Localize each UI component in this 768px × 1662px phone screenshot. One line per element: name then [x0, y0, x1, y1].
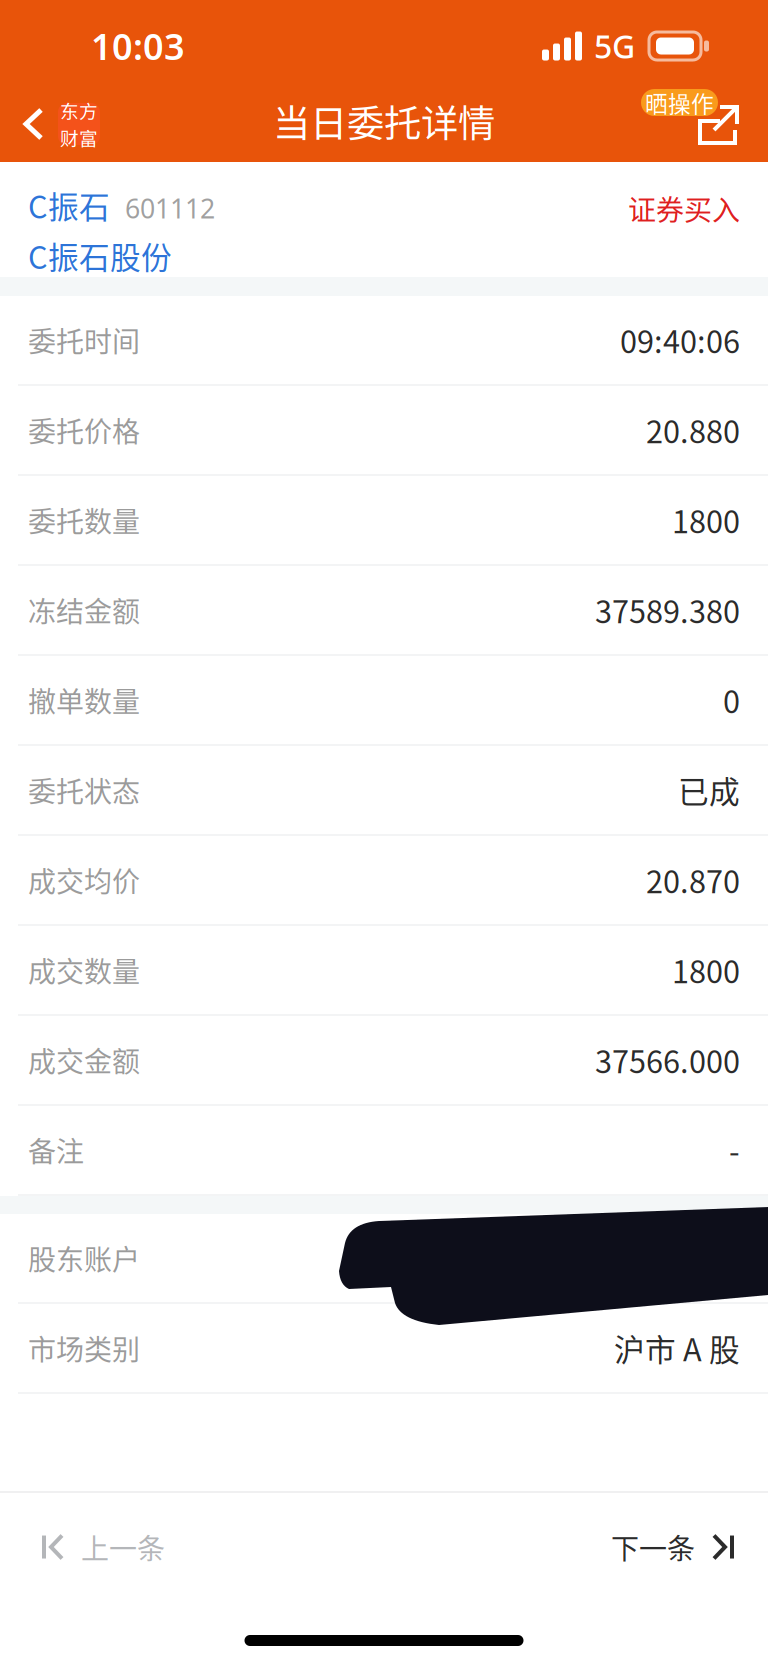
staticText: 上一条 [81, 1527, 165, 1567]
staticText: 委托时间 [28, 320, 140, 360]
button[interactable]: 上一条 [0, 1493, 205, 1601]
staticText: 37566.000 [595, 1038, 740, 1082]
staticText: 财富 [60, 124, 98, 151]
staticText: 1800 [672, 498, 740, 542]
staticText: 0 [723, 678, 740, 722]
staticText: 20.880 [646, 408, 740, 452]
button[interactable]: 返回 [0, 89, 190, 159]
staticText: 委托状态 [28, 770, 140, 810]
staticText: 证券买入 [628, 188, 740, 228]
staticText: 下一条 [611, 1527, 695, 1567]
staticText: C振石 [28, 183, 110, 227]
staticText: 市场类别 [28, 1328, 140, 1368]
staticText: 沪市 A 股 [614, 1326, 740, 1370]
staticText: 委托数量 [28, 500, 140, 540]
staticText: 备注 [28, 1130, 84, 1170]
staticText: 成交数量 [28, 950, 140, 990]
staticText: 当日委托详情 [273, 94, 495, 148]
staticText: 5G [594, 25, 635, 67]
staticText: C振石股份 [28, 233, 172, 278]
staticText: 1800 [672, 948, 740, 992]
staticText: 已成 [678, 768, 740, 812]
button[interactable]: 分享 [641, 88, 768, 161]
staticText: 09:40:06 [620, 318, 740, 362]
staticText: 10:03 [91, 22, 185, 70]
staticText: 撤单数量 [28, 680, 140, 720]
staticText: 601112 [125, 190, 215, 226]
staticText: 成交金额 [28, 1040, 140, 1080]
staticText: 成交均价 [28, 860, 140, 900]
staticText: 委托价格 [28, 410, 140, 450]
staticText: 股东账户 [28, 1238, 140, 1278]
staticText: 东方 [60, 97, 98, 124]
staticText: - [729, 1128, 740, 1172]
button[interactable]: 下一条 [581, 1493, 768, 1601]
staticText: 37589.380 [595, 588, 740, 632]
staticText: 晒操作 [645, 86, 714, 119]
staticText: 冻结金额 [28, 590, 140, 630]
staticText: 20.870 [646, 858, 740, 902]
